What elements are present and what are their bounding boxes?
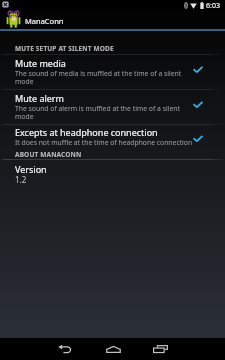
button[interactable]: Toggle Excepts at headphone connection	[188, 130, 208, 148]
staticText: Mute alerm	[15, 92, 64, 104]
staticText: Excepts at headphone connection	[15, 126, 158, 138]
button[interactable]: Toggle Mute media	[188, 61, 208, 79]
button[interactable]: Version	[0, 160, 225, 187]
button[interactable]: Excepts at headphone connection	[0, 123, 225, 155]
staticText: ABOUT MANACONN	[15, 150, 82, 159]
button[interactable]: Mute alerm	[0, 89, 225, 121]
button[interactable]: Back	[45, 338, 83, 360]
staticText: 6:03	[206, 1, 220, 11]
button[interactable]: Recent apps	[141, 338, 179, 360]
staticText: It does not muffle at the time of headph…	[15, 138, 193, 147]
button[interactable]: Mute media	[0, 54, 225, 86]
staticText: Version	[15, 163, 47, 175]
button[interactable]: Toggle Mute alerm	[188, 96, 208, 114]
staticText: The sound of media is muffled at the tim…	[15, 69, 193, 86]
staticText: Mute media	[15, 57, 66, 69]
staticText: 1.2	[15, 174, 27, 185]
button[interactable]: Home	[94, 338, 132, 360]
staticText: The sound of alerm is muffled at the tim…	[15, 104, 193, 121]
staticText: ManaConn	[25, 16, 64, 26]
staticText: MUTE SETUP AT SILENT MODE	[15, 44, 114, 53]
